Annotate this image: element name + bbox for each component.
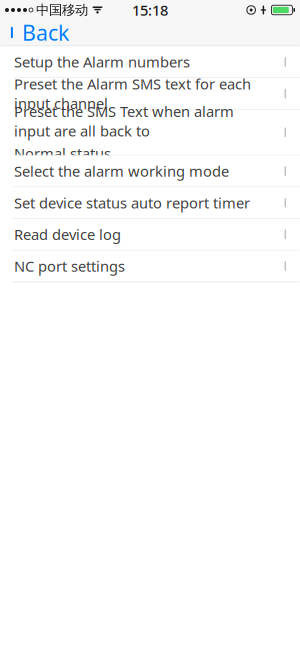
button[interactable]: NC port settings	[0, 251, 300, 282]
staticText: 15:18	[132, 0, 168, 20]
staticText: Setup the Alarm numbers	[14, 52, 190, 72]
staticText: NC port settings	[14, 256, 125, 276]
staticText: 中国移动	[36, 2, 88, 18]
button[interactable]: Read device log	[0, 219, 300, 250]
staticText: Select the alarm working mode	[14, 161, 229, 181]
staticText: Set device status auto report timer	[14, 193, 250, 212]
staticText: Back	[22, 18, 69, 47]
button[interactable]: Setup the Alarm numbers	[0, 46, 300, 77]
button[interactable]: Set device status auto report timer	[0, 187, 300, 218]
button[interactable]: Preset the Alarm SMS text for each input…	[0, 78, 300, 109]
button[interactable]: Back	[0, 20, 81, 45]
staticText: Preset the SMS Text when alarm input are…	[14, 102, 234, 141]
button[interactable]: Preset the SMS Text when alarm input are…	[0, 110, 300, 155]
staticText: Read device log	[14, 225, 121, 244]
button[interactable]: Select the alarm working mode	[0, 155, 300, 186]
staticText: Normal status	[14, 143, 111, 163]
staticText: Preset the Alarm SMS text for each input…	[14, 74, 251, 113]
